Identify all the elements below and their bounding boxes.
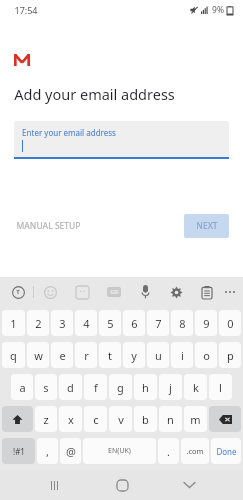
staticText: v	[118, 412, 124, 427]
button[interactable]: j	[159, 374, 182, 400]
button[interactable]: s	[35, 374, 57, 400]
button[interactable]: 8	[171, 310, 193, 336]
button[interactable]: x	[59, 406, 82, 432]
button[interactable]: Keyboard settings	[165, 281, 187, 303]
staticText: i	[181, 348, 184, 363]
staticText: d	[67, 380, 74, 395]
staticText: w	[34, 348, 43, 363]
staticText: 5	[107, 316, 114, 331]
staticText: MANUAL SETUP	[16, 220, 81, 232]
button[interactable]: o	[195, 342, 217, 368]
staticText: 6	[131, 316, 138, 331]
button[interactable]: Stickers	[71, 281, 93, 303]
staticText: n	[167, 412, 174, 427]
button[interactable]: Home	[109, 472, 135, 498]
button[interactable]: k	[184, 374, 207, 400]
staticText: a	[19, 380, 26, 395]
staticText: 3	[59, 316, 66, 331]
button[interactable]: EN(UK)	[83, 438, 156, 464]
button[interactable]: l	[209, 374, 232, 400]
button[interactable]: ,	[37, 438, 58, 464]
button[interactable]: g	[109, 374, 132, 400]
button[interactable]: 1	[2, 310, 25, 336]
staticText: r	[84, 348, 89, 363]
staticText: 8	[179, 316, 186, 331]
staticText: Add your email address	[14, 84, 175, 104]
button[interactable]: Emoji	[39, 281, 61, 303]
button[interactable]: Backspace	[209, 406, 241, 432]
button[interactable]: y	[123, 342, 145, 368]
staticText: NEXT	[196, 220, 218, 232]
button[interactable]: Clipboard	[196, 281, 218, 303]
button[interactable]: .com	[181, 438, 209, 464]
staticText: Done	[216, 446, 237, 457]
staticText: GIF	[110, 289, 119, 296]
button[interactable]: 3	[51, 310, 73, 336]
button[interactable]: MANUAL SETUP	[14, 214, 83, 238]
staticText: l	[219, 380, 222, 395]
button[interactable]: z	[35, 406, 57, 432]
button[interactable]: .	[158, 438, 179, 464]
button[interactable]: d	[59, 374, 82, 400]
staticText: h	[142, 380, 149, 395]
button[interactable]: 4	[75, 310, 97, 336]
button[interactable]: 7	[147, 310, 169, 336]
staticText: !#1	[13, 446, 25, 457]
button[interactable]: GIF	[103, 281, 125, 303]
staticText: j	[169, 380, 172, 395]
staticText: b	[142, 412, 149, 427]
button[interactable]: c	[84, 406, 107, 432]
staticText: 4	[83, 316, 90, 331]
button[interactable]: f	[84, 374, 107, 400]
button[interactable]: Recent apps	[41, 472, 67, 498]
staticText: .com	[186, 446, 204, 456]
button[interactable]: 9	[195, 310, 217, 336]
button[interactable]: Voice input	[134, 281, 156, 303]
button[interactable]: m	[184, 406, 207, 432]
staticText: e	[59, 348, 66, 363]
button[interactable]: Translate	[8, 282, 28, 302]
staticText: T	[16, 288, 20, 296]
button[interactable]: u	[147, 342, 169, 368]
button[interactable]: b	[134, 406, 157, 432]
button[interactable]: r	[75, 342, 97, 368]
staticText: c	[93, 412, 99, 427]
button[interactable]: @	[60, 438, 81, 464]
button[interactable]: More options	[225, 282, 235, 302]
button[interactable]: n	[159, 406, 182, 432]
button[interactable]: Back	[176, 472, 202, 498]
staticText: g	[117, 380, 124, 395]
staticText: 2	[35, 316, 42, 331]
staticText: 0	[227, 316, 234, 331]
button[interactable]: 6	[123, 310, 145, 336]
button[interactable]: i	[171, 342, 193, 368]
staticText: q	[10, 348, 17, 363]
staticText: y	[131, 348, 137, 363]
button[interactable]: t	[99, 342, 121, 368]
button[interactable]: Enter your email address	[14, 121, 229, 157]
button[interactable]: Done	[211, 438, 241, 464]
button[interactable]: !#1	[2, 438, 35, 464]
staticText: 9%	[212, 4, 224, 16]
button[interactable]: e	[51, 342, 73, 368]
staticText: EN(UK)	[108, 446, 131, 456]
button[interactable]: v	[109, 406, 132, 432]
button[interactable]: p	[219, 342, 241, 368]
staticText: 9	[203, 316, 210, 331]
staticText: @	[66, 444, 76, 459]
staticText: f	[94, 380, 98, 395]
button[interactable]: 2	[27, 310, 49, 336]
button[interactable]: Shift	[2, 406, 33, 432]
button[interactable]: 5	[99, 310, 121, 336]
staticText: s	[43, 380, 49, 395]
staticText: x	[68, 412, 74, 427]
staticText: o	[203, 348, 210, 363]
button[interactable]: a	[11, 374, 33, 400]
staticText: 1	[10, 316, 17, 331]
button[interactable]: w	[27, 342, 49, 368]
button[interactable]: q	[2, 342, 25, 368]
staticText: Enter your email address	[22, 127, 116, 138]
button[interactable]: 0	[219, 310, 241, 336]
button[interactable]: NEXT	[184, 214, 229, 238]
button[interactable]: h	[134, 374, 157, 400]
